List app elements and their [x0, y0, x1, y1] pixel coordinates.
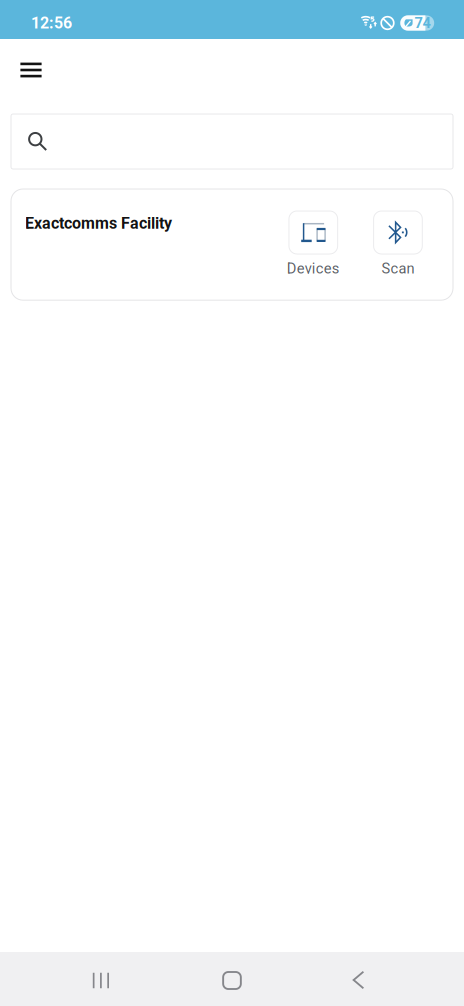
staticText: Devices	[287, 260, 340, 277]
button[interactable]: Recent apps	[69, 952, 131, 1006]
staticText: Scan	[381, 260, 414, 277]
staticText: Exactcomms Facility	[25, 214, 172, 233]
button[interactable]: Devices	[287, 211, 340, 277]
button[interactable]: Home	[201, 952, 263, 1006]
button[interactable]: Menu	[10, 48, 52, 92]
button[interactable]: Back	[332, 952, 394, 1006]
staticText: 12:56	[31, 14, 72, 32]
staticText: 74	[414, 14, 430, 32]
button[interactable]: Search	[11, 114, 453, 169]
button[interactable]: Scan	[374, 211, 422, 277]
